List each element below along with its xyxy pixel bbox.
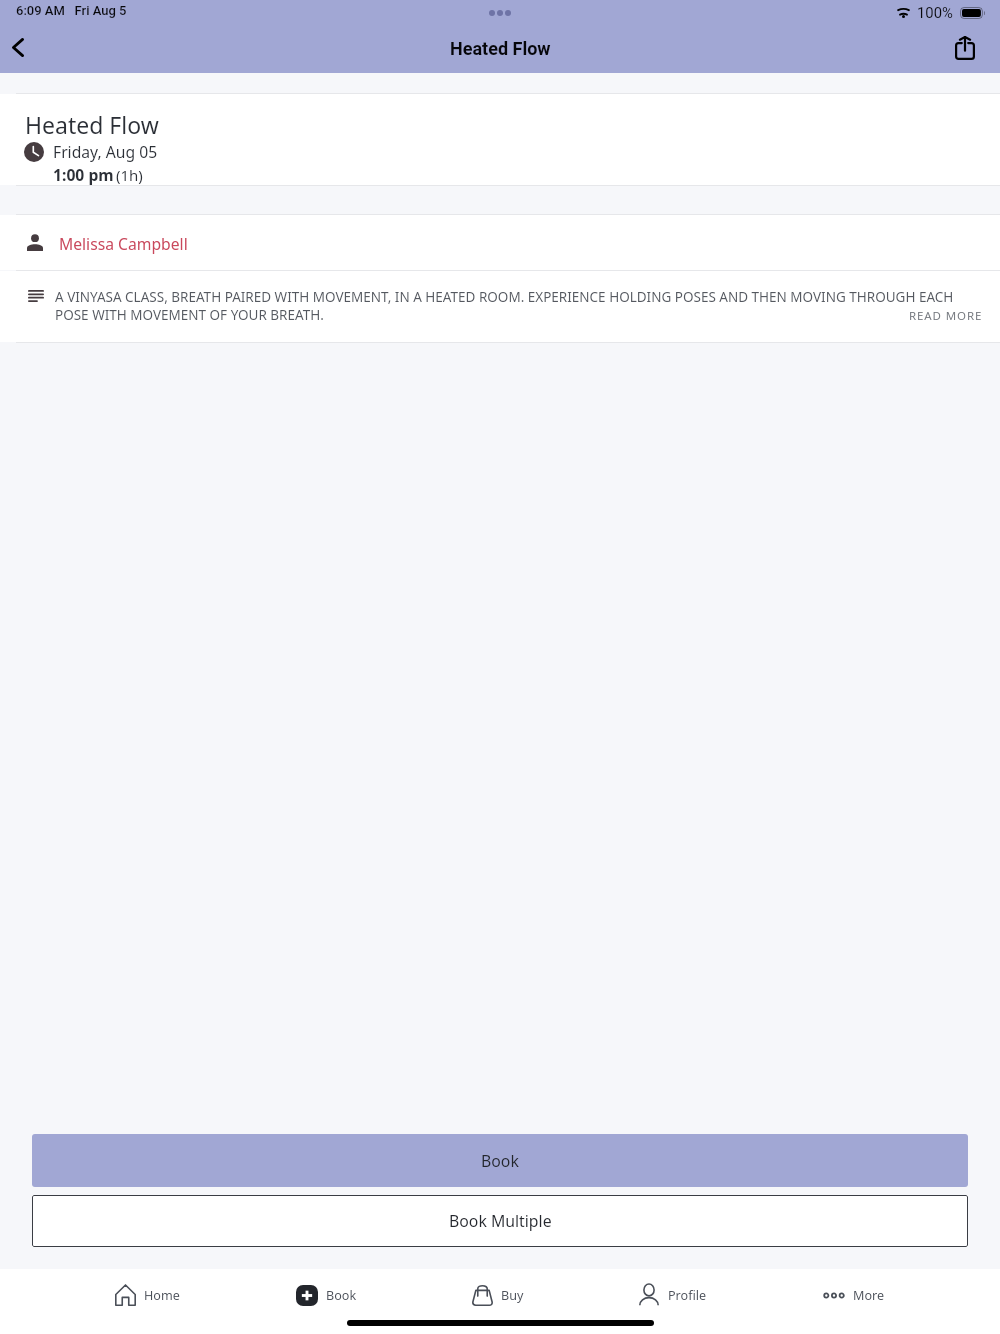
button[interactable]: Book: [296, 1285, 357, 1306]
staticText: Melissa Campbell: [59, 233, 188, 254]
staticText: Heated Flow: [450, 38, 551, 59]
staticText: Friday, Aug 05: [53, 141, 158, 162]
button[interactable]: Buy: [472, 1284, 524, 1306]
staticText: 100%: [917, 4, 953, 21]
button[interactable]: Melissa Campbell: [0, 215, 1000, 270]
button[interactable]: Book Multiple: [32, 1195, 968, 1247]
staticText: READ MORE: [909, 308, 983, 324]
button[interactable]: READ MORE: [902, 305, 990, 327]
staticText: Book Multiple: [449, 1210, 552, 1232]
button[interactable]: Book: [32, 1134, 968, 1187]
staticText: 1:00 pm: [53, 164, 114, 185]
button[interactable]: Back: [0, 25, 46, 70]
button[interactable]: More: [823, 1285, 885, 1306]
staticText: Book: [326, 1287, 357, 1304]
button[interactable]: Home: [115, 1284, 180, 1306]
staticText: Buy: [501, 1287, 524, 1304]
staticText: Home: [144, 1287, 180, 1304]
staticText: A VINYASA CLASS, BREATH PAIRED WITH MOVE…: [55, 288, 957, 324]
staticText: More: [853, 1287, 885, 1304]
button[interactable]: Profile: [639, 1284, 707, 1306]
staticText: Book: [481, 1150, 519, 1172]
staticText: Heated Flow: [25, 109, 159, 140]
staticText: (1h): [116, 165, 143, 185]
staticText: Profile: [668, 1287, 707, 1304]
staticText: 6:09 AM Fri Aug 5: [16, 3, 127, 18]
button[interactable]: Share: [941, 25, 989, 70]
